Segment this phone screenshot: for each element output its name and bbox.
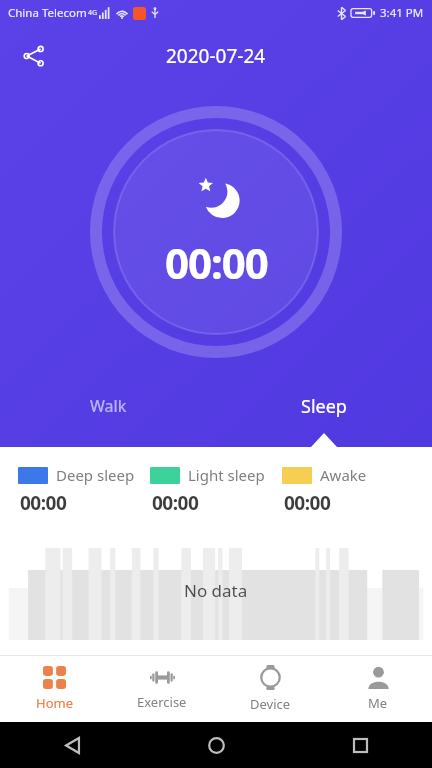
staticText: 00:00 — [284, 490, 331, 516]
button[interactable]: Walk — [0, 381, 216, 447]
button[interactable]: Back — [50, 723, 94, 767]
staticText: Awake — [320, 465, 367, 485]
staticText: 3:41 PM — [380, 5, 424, 21]
staticText: No data — [184, 579, 248, 602]
button[interactable]: Recents — [338, 723, 382, 767]
button[interactable]: Home — [194, 723, 238, 767]
staticText: 00:00 — [152, 490, 199, 516]
staticText: Light sleep — [188, 465, 265, 485]
staticText: China Telecom — [8, 5, 87, 21]
button[interactable]: Awake — [282, 465, 414, 516]
staticText: 00:00 — [165, 234, 268, 291]
staticText: Sleep — [301, 394, 347, 419]
button[interactable]: Deep sleep — [18, 465, 150, 516]
staticText: 4G — [88, 8, 98, 18]
button[interactable]: Sleep — [216, 381, 432, 447]
staticText: Deep sleep — [56, 465, 135, 485]
staticText: Device — [250, 695, 291, 713]
button[interactable]: Device — [216, 656, 324, 722]
button[interactable]: Me — [324, 656, 432, 722]
staticText: Exercise — [137, 693, 187, 711]
button[interactable]: Light sleep — [150, 465, 282, 516]
staticText: Home — [36, 694, 73, 712]
button[interactable]: Home — [0, 656, 108, 722]
staticText: Me — [368, 694, 388, 712]
button[interactable]: Share — [12, 34, 56, 78]
staticText: 2020-07-24 — [166, 43, 266, 69]
staticText: Walk — [90, 395, 127, 417]
staticText: 00:00 — [20, 490, 67, 516]
button[interactable]: Exercise — [108, 656, 216, 722]
